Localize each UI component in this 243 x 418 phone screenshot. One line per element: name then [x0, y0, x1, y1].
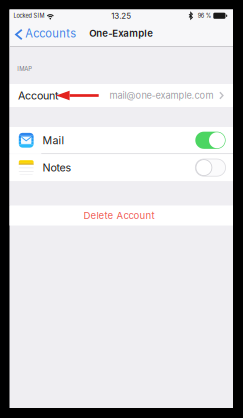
button[interactable]: Account — [9, 84, 233, 107]
button[interactable]: Delete Account — [9, 205, 233, 225]
staticText: 13.25 — [111, 11, 131, 21]
staticText: Mail — [42, 134, 64, 147]
button[interactable]: Mail — [9, 127, 233, 153]
staticText: Accounts — [25, 27, 76, 40]
button[interactable]: Accounts — [9, 22, 81, 47]
staticText: Locked SIM — [13, 12, 44, 19]
staticText: 96 % — [198, 12, 211, 19]
staticText: One-Example — [89, 27, 153, 39]
button[interactable]: Notes — [9, 154, 233, 181]
staticText: Account — [18, 89, 58, 102]
staticText: Notes — [42, 161, 71, 174]
staticText: mail@one-example.com — [109, 90, 213, 101]
staticText: IMAP — [17, 65, 32, 72]
staticText: Delete Account — [83, 210, 154, 221]
